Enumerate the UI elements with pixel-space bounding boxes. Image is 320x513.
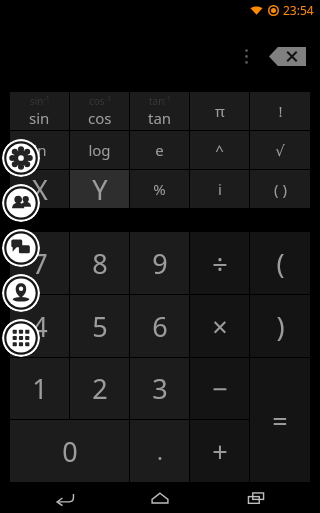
button[interactable]: 3 [130,358,189,419]
staticText: X [32,171,48,208]
button[interactable]: Delete [269,47,306,66]
staticText: = [272,402,288,439]
staticText: sin-1 [30,94,50,108]
button[interactable]: π [190,92,249,130]
button[interactable]: = [250,358,310,482]
button[interactable]: ! [250,92,310,130]
button[interactable]: ^ [190,131,249,169]
staticText: cos-1 [89,94,111,108]
button[interactable]: ) [250,295,310,357]
staticText: e [155,140,164,160]
staticText: ) [276,308,285,345]
button[interactable]: Settings [2,139,40,177]
button[interactable]: 8 [70,232,129,294]
button[interactable]: Back [34,482,96,513]
button[interactable]: Home [129,482,191,513]
button[interactable]: Recents [225,482,287,513]
button[interactable]: ÷ [190,232,249,294]
button[interactable]: 7 [10,232,69,294]
staticText: 5 [92,308,108,345]
button[interactable]: cos-1 [70,92,129,130]
staticText: ! [278,101,283,121]
staticText: ^ [215,140,224,160]
staticText: + [212,433,228,470]
button[interactable]: . [130,420,189,482]
staticText: 6 [152,308,168,345]
staticText: 2 [92,370,108,407]
staticText: tan [148,108,172,128]
button[interactable]: 6 [130,295,189,357]
button[interactable]: ( [250,232,310,294]
button[interactable]: 2 [70,358,129,419]
button[interactable]: − [190,358,249,419]
button[interactable]: i [190,170,249,208]
staticText: π [215,101,225,121]
staticText: ( ) [274,179,287,199]
button[interactable]: × [190,295,249,357]
staticText: 7 [32,245,48,282]
button[interactable]: tan-1 [130,92,189,130]
staticText: 0 [62,433,78,470]
staticText: 9 [152,245,168,282]
button[interactable]: + [190,420,249,482]
staticText: × [212,308,228,345]
button[interactable]: % [130,170,189,208]
staticText: tan-1 [149,94,171,108]
staticText: i [218,179,222,199]
staticText: 8 [92,245,108,282]
button[interactable]: e [130,131,189,169]
button[interactable]: √ [250,131,310,169]
button[interactable]: 1 [10,358,69,419]
staticText: ( [276,245,285,282]
button[interactable]: 9 [130,232,189,294]
button[interactable]: Messages [2,229,40,267]
staticText: sin [29,108,50,128]
button[interactable]: More options [235,39,257,73]
button[interactable]: 4 [10,295,69,357]
staticText: √ [275,142,285,159]
staticText: Y [92,171,108,208]
button[interactable]: 0 [10,420,129,482]
button[interactable]: Apps [2,319,40,357]
staticText: 23:54 [283,2,314,18]
button[interactable]: sin-1 [10,92,69,130]
staticText: ln [33,140,47,160]
staticText: 4 [32,308,48,345]
staticText: 3 [152,370,168,407]
button[interactable]: People [2,184,40,222]
staticText: cos [88,108,112,128]
button[interactable]: X [10,170,69,208]
staticText: . [157,436,163,466]
button[interactable]: Y [70,170,129,208]
staticText: − [212,370,228,407]
staticText: ÷ [212,245,228,282]
button[interactable]: 5 [70,295,129,357]
button[interactable]: ( ) [250,170,310,208]
button[interactable]: log [70,131,129,169]
staticText: 1 [32,370,48,407]
staticText: % [153,179,166,199]
staticText: log [88,140,111,160]
button[interactable]: ln [10,131,69,169]
button[interactable]: Location [2,274,40,312]
